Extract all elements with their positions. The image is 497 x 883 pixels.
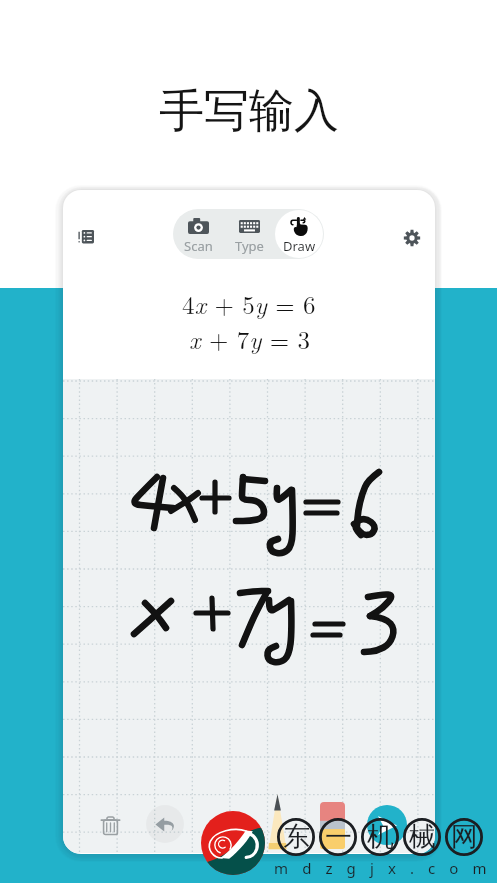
button[interactable]: Eraser <box>317 802 348 852</box>
button[interactable]: Scan <box>173 209 224 259</box>
button[interactable]: Delete <box>90 805 130 845</box>
button[interactable]: Draw <box>274 209 324 259</box>
staticText: Scan <box>184 237 213 255</box>
staticText: 械 <box>409 820 436 854</box>
staticText: 4x + 5y = 6 <box>182 286 316 321</box>
staticText: m d z g j x . c o m <box>274 858 492 878</box>
staticText: 东 <box>283 820 310 854</box>
button[interactable]: Settings <box>389 215 435 261</box>
staticText: 机 <box>367 820 394 854</box>
staticText: x + 7y = 3 <box>189 321 310 356</box>
button[interactable]: Undo <box>146 805 184 843</box>
button[interactable]: Pen <box>262 793 292 853</box>
button[interactable]: Submit <box>367 805 407 845</box>
staticText: Type <box>235 237 264 255</box>
staticText: 网 <box>451 820 478 854</box>
button[interactable]: History <box>63 213 109 259</box>
button[interactable]: Type <box>224 209 274 259</box>
staticText: Draw <box>283 237 316 255</box>
staticText: 手写输入 <box>159 83 339 140</box>
staticText: 一 <box>325 820 352 854</box>
